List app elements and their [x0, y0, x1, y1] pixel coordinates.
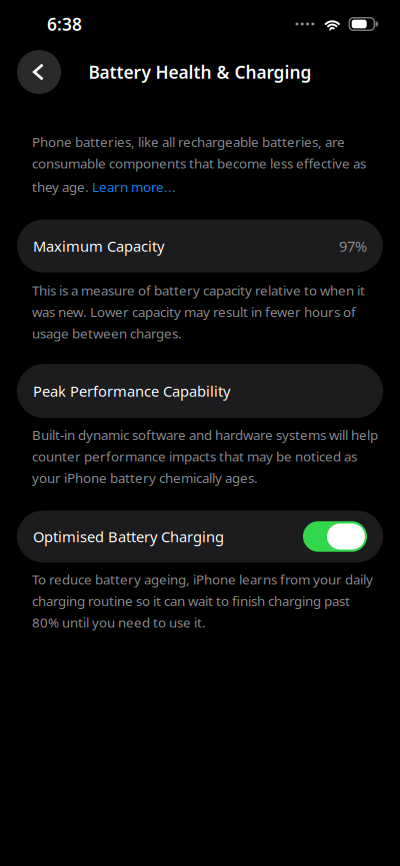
staticText: charging routine so it can wait to finis…	[32, 592, 350, 610]
staticText: Built-in dynamic software and hardware s…	[32, 426, 378, 444]
staticText: 80% until you need to use it.	[32, 613, 206, 631]
staticText: This is a measure of battery capacity re…	[32, 281, 365, 299]
staticText: Maximum Capacity	[33, 236, 164, 256]
staticText: To reduce battery ageing, iPhone learns …	[32, 570, 373, 588]
staticText: 97%	[339, 236, 367, 256]
staticText: they age.	[32, 178, 92, 196]
staticText: counter performance impacts that may be …	[32, 447, 357, 465]
staticText: Battery Health & Charging	[88, 60, 311, 83]
staticText: usage between charges.	[32, 324, 182, 342]
staticText: Phone batteries, like all rechargeable b…	[32, 133, 345, 151]
staticText: Learn more...	[92, 178, 176, 196]
button[interactable]: Peak Performance Capability	[17, 364, 383, 418]
button[interactable]: Back	[17, 50, 61, 94]
staticText: consumable components that become less e…	[32, 154, 366, 172]
staticText: Peak Performance Capability	[33, 381, 230, 401]
staticText: was new. Lower capacity may result in fe…	[32, 303, 356, 321]
staticText: your iPhone battery chemically ages.	[32, 469, 258, 487]
staticText: 6:38	[47, 12, 82, 35]
button[interactable]: Maximum Capacity	[17, 219, 383, 272]
button[interactable]: Optimised Battery Charging	[17, 510, 383, 562]
button[interactable]: Learn more...	[92, 178, 176, 196]
staticText: Optimised Battery Charging	[33, 527, 224, 546]
